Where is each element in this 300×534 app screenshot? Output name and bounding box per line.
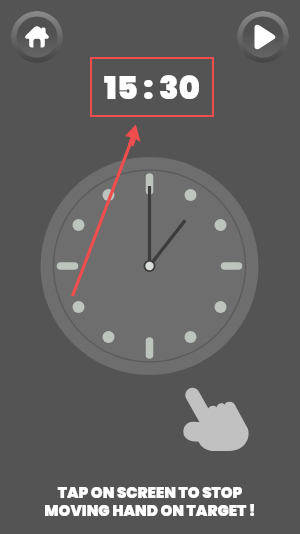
- button[interactable]: Play: [237, 11, 289, 63]
- button[interactable]: 15 : 30: [92, 59, 212, 115]
- staticText: TAP ON SCREEN TO STOP MOVING HAND ON TAR…: [44, 482, 256, 521]
- button[interactable]: Home: [11, 11, 63, 63]
- staticText: 15 : 30: [104, 65, 200, 110]
